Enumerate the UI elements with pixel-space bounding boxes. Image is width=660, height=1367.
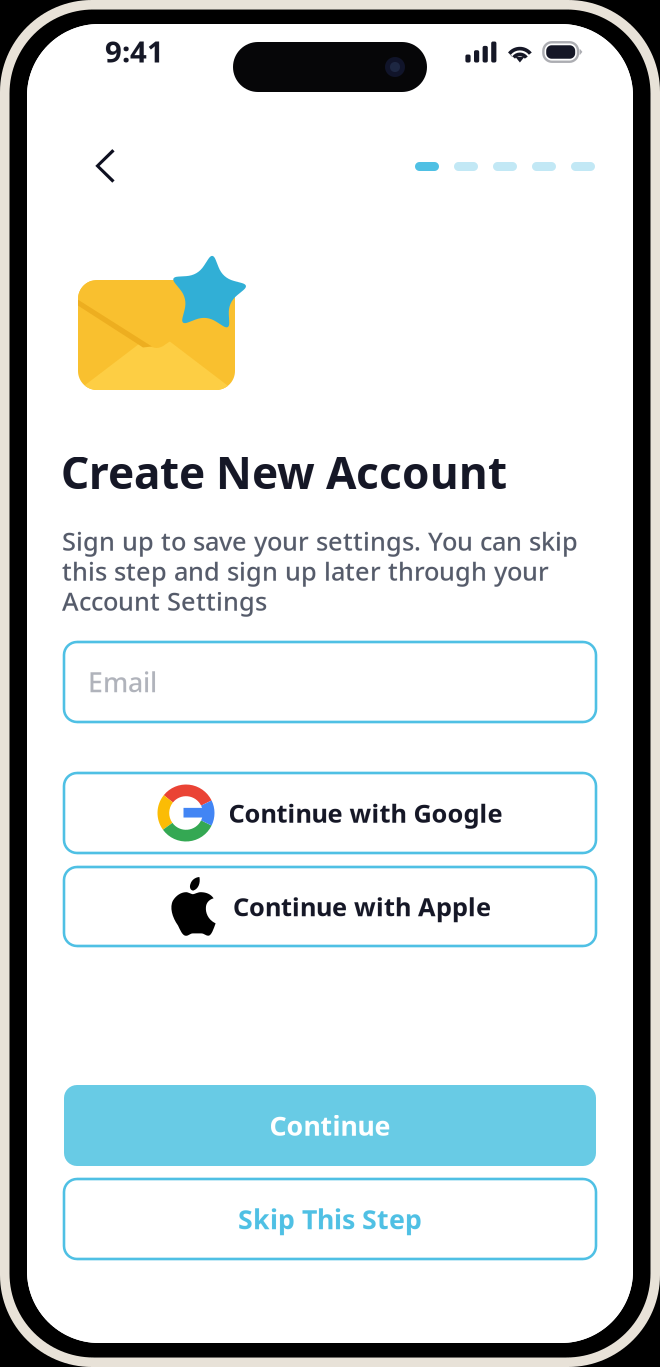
staticText: this step and sign up later through your — [62, 554, 549, 588]
staticText: Continue — [269, 1108, 390, 1143]
staticText: Create New Account — [61, 443, 507, 501]
staticText: Email — [88, 664, 157, 700]
button[interactable]: Skip This Step — [64, 1179, 596, 1259]
button[interactable]: Email — [64, 642, 596, 722]
button[interactable]: Continue with Google — [64, 773, 596, 853]
staticText: Continue with Google — [228, 796, 502, 830]
staticText: Sign up to save your settings. You can s… — [62, 524, 578, 558]
staticText: 9:41 — [105, 31, 164, 70]
staticText: Skip This Step — [238, 1201, 422, 1237]
button[interactable]: Continue — [64, 1085, 596, 1166]
button[interactable]: Continue with Apple — [64, 867, 596, 946]
button[interactable]: Back — [64, 133, 146, 199]
staticText: Continue with Apple — [233, 890, 491, 923]
staticText: Account Settings — [62, 584, 267, 618]
